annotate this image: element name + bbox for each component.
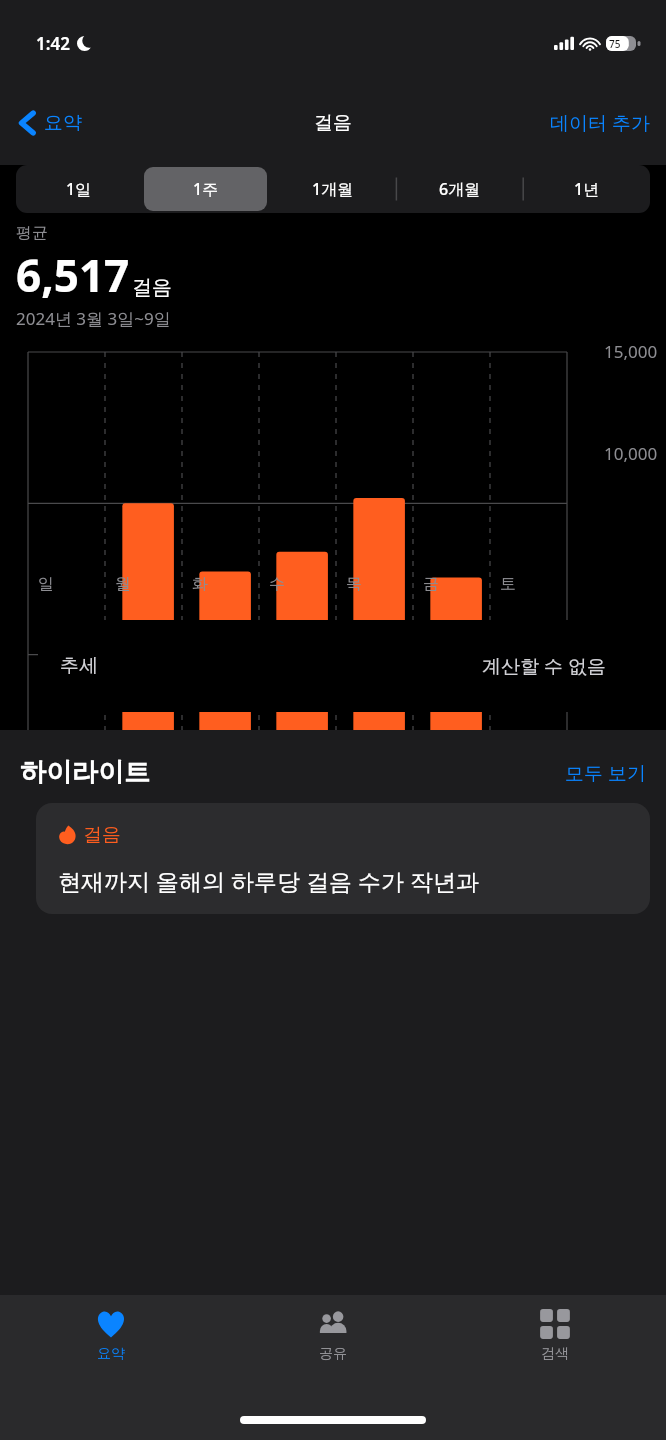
button[interactable]: 6개월	[398, 167, 521, 211]
button[interactable]: 걸음	[36, 803, 650, 914]
staticText: 요약	[97, 1345, 125, 1363]
staticText: 화	[192, 574, 208, 594]
staticText: 수	[269, 574, 285, 594]
staticText: 일	[38, 574, 54, 594]
other: 요약	[95, 1308, 127, 1340]
staticText: 6개월	[439, 178, 481, 200]
staticText: 1년	[574, 178, 600, 200]
staticText: 금	[423, 574, 439, 594]
staticText: 검색	[541, 1345, 569, 1363]
button[interactable]: 검색	[444, 1296, 666, 1384]
button[interactable]: 1주	[144, 167, 267, 211]
button[interactable]: 1일	[18, 167, 140, 211]
button[interactable]: 데이터 추가	[550, 110, 666, 136]
button[interactable]: 모두 보기	[565, 760, 646, 786]
staticText: 월	[115, 574, 131, 594]
staticText: 계산할 수 없음	[482, 653, 606, 679]
staticText: 추세	[60, 654, 98, 678]
staticText: 10,000	[604, 442, 658, 465]
staticText: 1:42	[36, 32, 70, 55]
staticText: 1일	[66, 178, 92, 200]
staticText: 걸음	[314, 111, 352, 135]
staticText: 걸음	[132, 275, 172, 300]
staticText: 6,517	[16, 245, 130, 305]
staticText: 요약	[44, 111, 82, 135]
staticText: 2024년 3월 3일~9일	[16, 307, 171, 330]
button[interactable]: 1개월	[271, 167, 394, 211]
button[interactable]: 공유	[222, 1296, 444, 1384]
staticText: 걸음	[83, 823, 121, 847]
button[interactable]: 1년	[525, 167, 648, 211]
other: 공유	[317, 1308, 349, 1340]
staticText: 평균	[16, 223, 48, 243]
staticText: 목	[346, 574, 362, 594]
staticText: 1주	[193, 178, 219, 200]
button[interactable]: 추세	[38, 620, 628, 712]
button[interactable]: 요약	[16, 108, 82, 138]
staticText: 토	[500, 574, 516, 594]
staticText: 공유	[319, 1345, 347, 1363]
staticText: 75	[609, 37, 621, 51]
other: 검색	[539, 1308, 571, 1340]
staticText: 하이라이트	[20, 756, 150, 789]
staticText: 1개월	[312, 178, 354, 200]
staticText: 모두 보기	[565, 760, 646, 786]
button[interactable]: 요약	[0, 1296, 222, 1384]
staticText: 현재까지 올해의 하루당 걸음 수가 작년과	[58, 865, 479, 896]
staticText: 데이터 추가	[550, 110, 650, 136]
staticText: 15,000	[604, 340, 658, 363]
